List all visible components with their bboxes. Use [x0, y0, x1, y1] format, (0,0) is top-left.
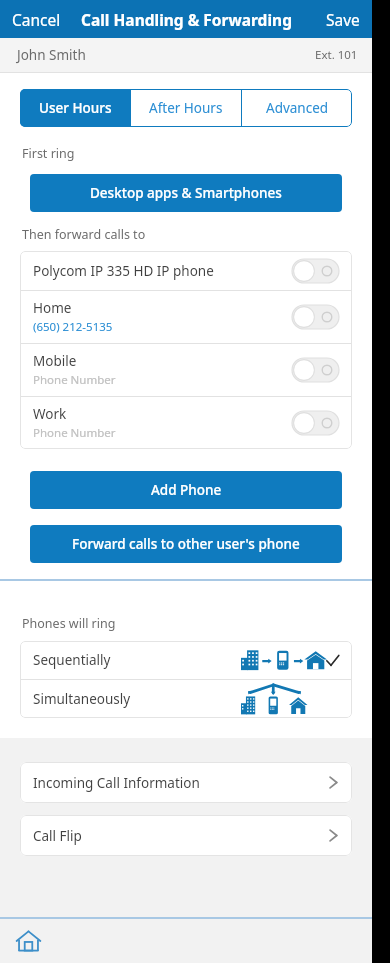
staticText: Phone Number [33, 372, 116, 388]
staticText: Add Phone [151, 481, 222, 499]
button[interactable]: Polycom IP 335 HD IP phone [20, 251, 352, 290]
button[interactable]: Advanced [242, 89, 352, 127]
staticText: Mobile [33, 352, 77, 370]
staticText: Save [326, 9, 360, 30]
button[interactable]: Desktop apps & Smartphones [30, 174, 342, 212]
staticText: Forward calls to other user's phone [72, 535, 300, 553]
button[interactable]: User Hours [20, 89, 130, 127]
staticText: Incoming Call Information [33, 774, 200, 792]
button[interactable]: Incoming Call Information [20, 762, 352, 803]
staticText: John Smith [17, 46, 86, 64]
button[interactable]: Sequentially [20, 641, 352, 679]
staticText: (650) 212-5135 [33, 319, 113, 335]
staticText: Cancel [12, 9, 61, 30]
staticText: Home [33, 299, 72, 317]
button[interactable]: Toggle [292, 259, 339, 283]
button[interactable]: Simultaneously [20, 680, 352, 718]
button[interactable]: Home [11, 924, 45, 958]
staticText: Call Handling & Forwarding [81, 9, 292, 30]
staticText: Desktop apps & Smartphones [90, 184, 282, 202]
button[interactable]: Save [314, 3, 372, 36]
button[interactable]: Mobile [20, 344, 352, 396]
button[interactable]: Add Phone [30, 471, 342, 509]
staticText: Then forward calls to [22, 226, 146, 243]
staticText: User Hours [39, 99, 112, 117]
staticText: First ring [22, 145, 75, 162]
button[interactable]: After Hours [131, 89, 241, 127]
staticText: Work [33, 405, 67, 423]
staticText: Call Flip [33, 827, 82, 845]
staticText: Phones will ring [22, 615, 116, 632]
button[interactable]: Work [20, 397, 352, 449]
staticText: Polycom IP 335 HD IP phone [33, 262, 214, 280]
button[interactable]: Cancel [0, 3, 73, 36]
button[interactable]: Toggle [292, 305, 339, 329]
button[interactable]: Toggle [292, 358, 339, 382]
staticText: After Hours [149, 99, 223, 117]
staticText: Ext. 101 [315, 47, 358, 63]
button[interactable]: Call Flip [20, 815, 352, 856]
button[interactable]: Forward calls to other user's phone [30, 525, 342, 563]
staticText: Phone Number [33, 425, 116, 441]
button[interactable]: Home [20, 291, 352, 343]
staticText: Sequentially [33, 651, 111, 669]
button[interactable]: Toggle [292, 411, 339, 435]
staticText: Simultaneously [33, 690, 131, 708]
staticText: Advanced [266, 99, 329, 117]
